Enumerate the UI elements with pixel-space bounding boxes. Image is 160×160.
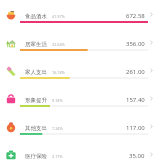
staticText: 食品酒水 — [25, 13, 47, 20]
staticText: 16.18% — [52, 70, 65, 75]
staticText: 家人支出 — [25, 69, 47, 76]
staticText: 35.00 — [129, 152, 145, 160]
staticText: 261.00 — [126, 68, 145, 76]
button[interactable]: 居家生活 — [0, 28, 160, 56]
staticText: 22.04% — [52, 42, 65, 47]
staticText: 医疗保险 — [25, 153, 47, 160]
button[interactable]: 家人支出 — [0, 56, 160, 84]
staticText: 672.58 — [126, 12, 145, 20]
staticText: 41.97% — [52, 14, 65, 19]
button[interactable]: 食品酒水 — [0, 0, 160, 28]
staticText: 157.40 — [126, 96, 145, 104]
staticText: 2.17% — [52, 154, 63, 159]
staticText: 117.00 — [126, 124, 145, 132]
staticText: 居家生活 — [25, 41, 47, 48]
staticText: 形象提升 — [25, 97, 47, 104]
button[interactable]: 医疗保险 — [0, 140, 160, 160]
staticText: 其他支出 — [25, 125, 47, 132]
staticText: 356.00 — [126, 40, 145, 48]
staticText: 7.24% — [52, 126, 63, 131]
staticText: 9.74% — [52, 98, 63, 103]
button[interactable]: 其他支出 — [0, 112, 160, 140]
button[interactable]: 形象提升 — [0, 84, 160, 112]
